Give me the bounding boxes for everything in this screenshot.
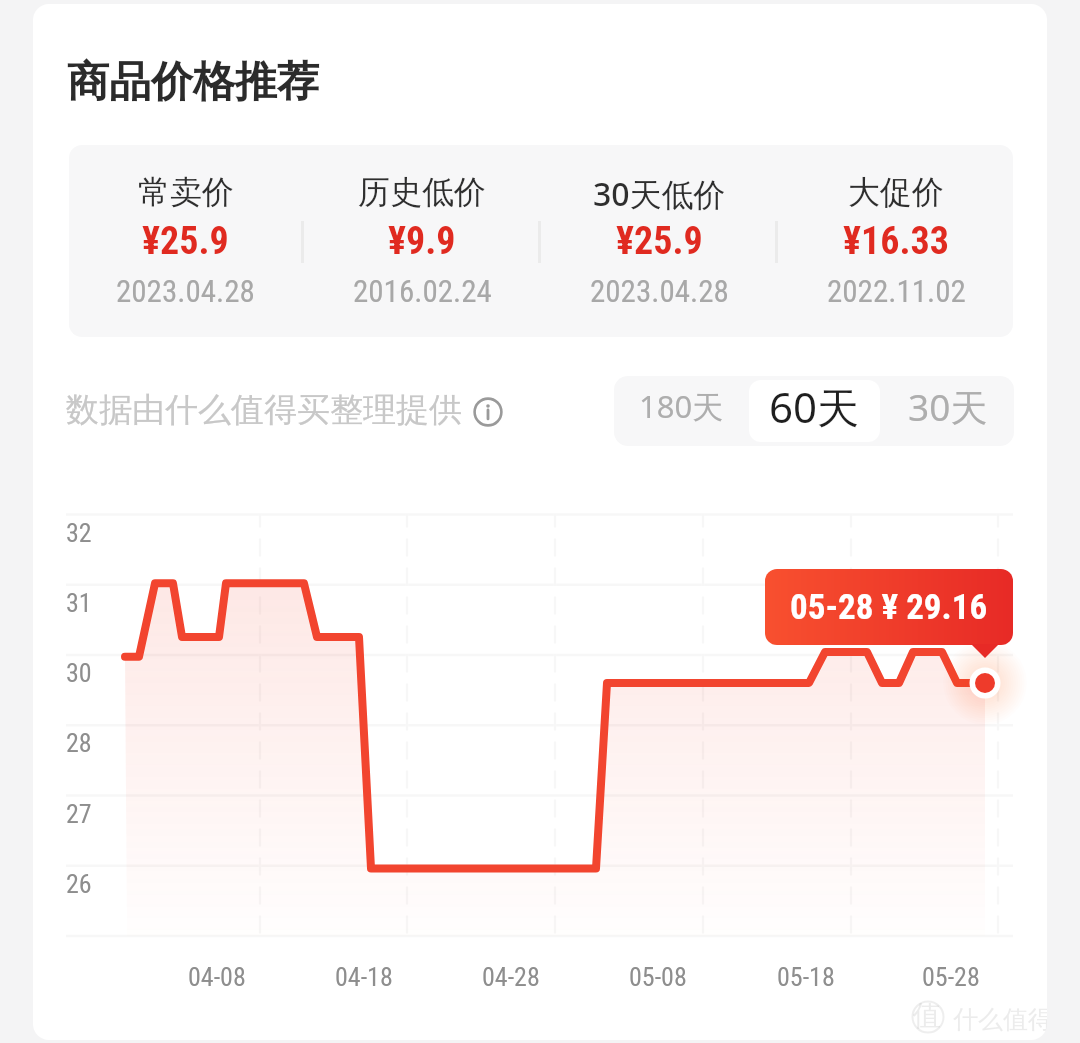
staticText: 2023.04.28: [590, 273, 729, 309]
staticText: 60天: [769, 380, 860, 435]
staticText: 值: [913, 998, 941, 1033]
staticText: 180天: [639, 385, 724, 427]
staticText: 27: [66, 799, 92, 829]
staticText: 05-28: [922, 962, 980, 992]
staticText: 30天: [908, 381, 988, 432]
staticText: 28: [66, 728, 92, 758]
button[interactable]: 大促价: [779, 145, 1013, 337]
button[interactable]: 数据来源说明: [66, 375, 505, 445]
staticText: 2023.04.28: [116, 273, 255, 309]
staticText: 2022.11.02: [827, 273, 966, 309]
button[interactable]: 180天: [615, 380, 747, 442]
staticText: 商品价格推荐: [67, 56, 319, 109]
staticText: 05-18: [777, 962, 835, 992]
staticText: 历史低价: [358, 172, 486, 212]
button[interactable]: 05-28 ¥ 29.16: [765, 569, 1013, 645]
button[interactable]: 60天: [749, 380, 880, 442]
staticText: ¥9.9: [388, 219, 456, 264]
staticText: 常卖价: [138, 172, 234, 212]
staticText: 数据由什么值得买整理提供: [66, 389, 462, 431]
staticText: 26: [66, 869, 92, 899]
staticText: 04-08: [188, 962, 246, 992]
staticText: 什么值得买: [953, 1004, 1047, 1035]
staticText: ¥16.33: [843, 219, 949, 264]
button[interactable]: 30天: [882, 380, 1013, 442]
staticText: 05-28 ¥ 29.16: [790, 587, 988, 628]
staticText: ¥25.9: [616, 219, 703, 264]
button[interactable]: Info: [471, 393, 505, 427]
button[interactable]: 历史低价: [305, 145, 539, 337]
staticText: 32: [66, 518, 92, 548]
staticText: 30天低价: [593, 172, 726, 216]
staticText: ¥25.9: [142, 219, 229, 264]
staticText: 04-28: [482, 962, 540, 992]
staticText: 04-18: [335, 962, 393, 992]
staticText: 31: [66, 588, 92, 618]
staticText: 2016.02.24: [353, 273, 492, 309]
button[interactable]: 30天低价: [542, 145, 776, 337]
staticText: 30: [66, 658, 92, 688]
staticText: 大促价: [848, 172, 944, 212]
staticText: 05-08: [629, 962, 687, 992]
button[interactable]: 常卖价: [69, 145, 302, 337]
